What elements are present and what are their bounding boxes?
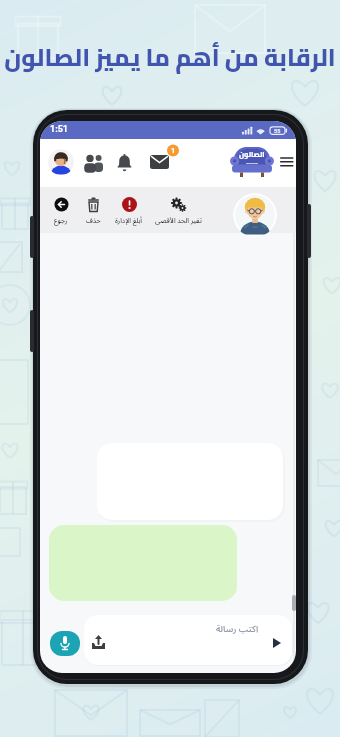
staticText: حذف	[86, 214, 101, 228]
button[interactable]	[280, 157, 294, 167]
button[interactable]	[83, 153, 105, 171]
staticText: اكتب رسالة	[216, 620, 259, 639]
staticText: رجوع	[54, 214, 68, 228]
button[interactable]	[233, 193, 277, 237]
button[interactable]: الصالون	[230, 147, 274, 183]
staticText: تغير الحد الأقصى	[155, 214, 202, 228]
button[interactable]	[117, 153, 131, 171]
button[interactable]	[50, 631, 80, 656]
button[interactable]: أبلغ الإدارة	[111, 197, 147, 227]
button[interactable]: 1	[146, 143, 182, 175]
staticText: 1	[171, 146, 176, 155]
button[interactable]: حذف	[82, 197, 104, 227]
staticText: 55	[274, 128, 281, 134]
staticText: أبلغ الإدارة	[115, 214, 143, 228]
button[interactable]	[280, 157, 294, 167]
staticText: الرقابة من أهم ما يميز الصالون	[4, 35, 336, 80]
button[interactable]: رجوع	[49, 197, 73, 227]
button[interactable]	[48, 149, 74, 175]
button[interactable]: تغير الحد الأقصى	[152, 197, 204, 227]
button[interactable]: اكتب رسالة	[84, 615, 292, 665]
staticText: الصالون	[239, 148, 265, 161]
staticText: 1:51	[50, 124, 69, 135]
